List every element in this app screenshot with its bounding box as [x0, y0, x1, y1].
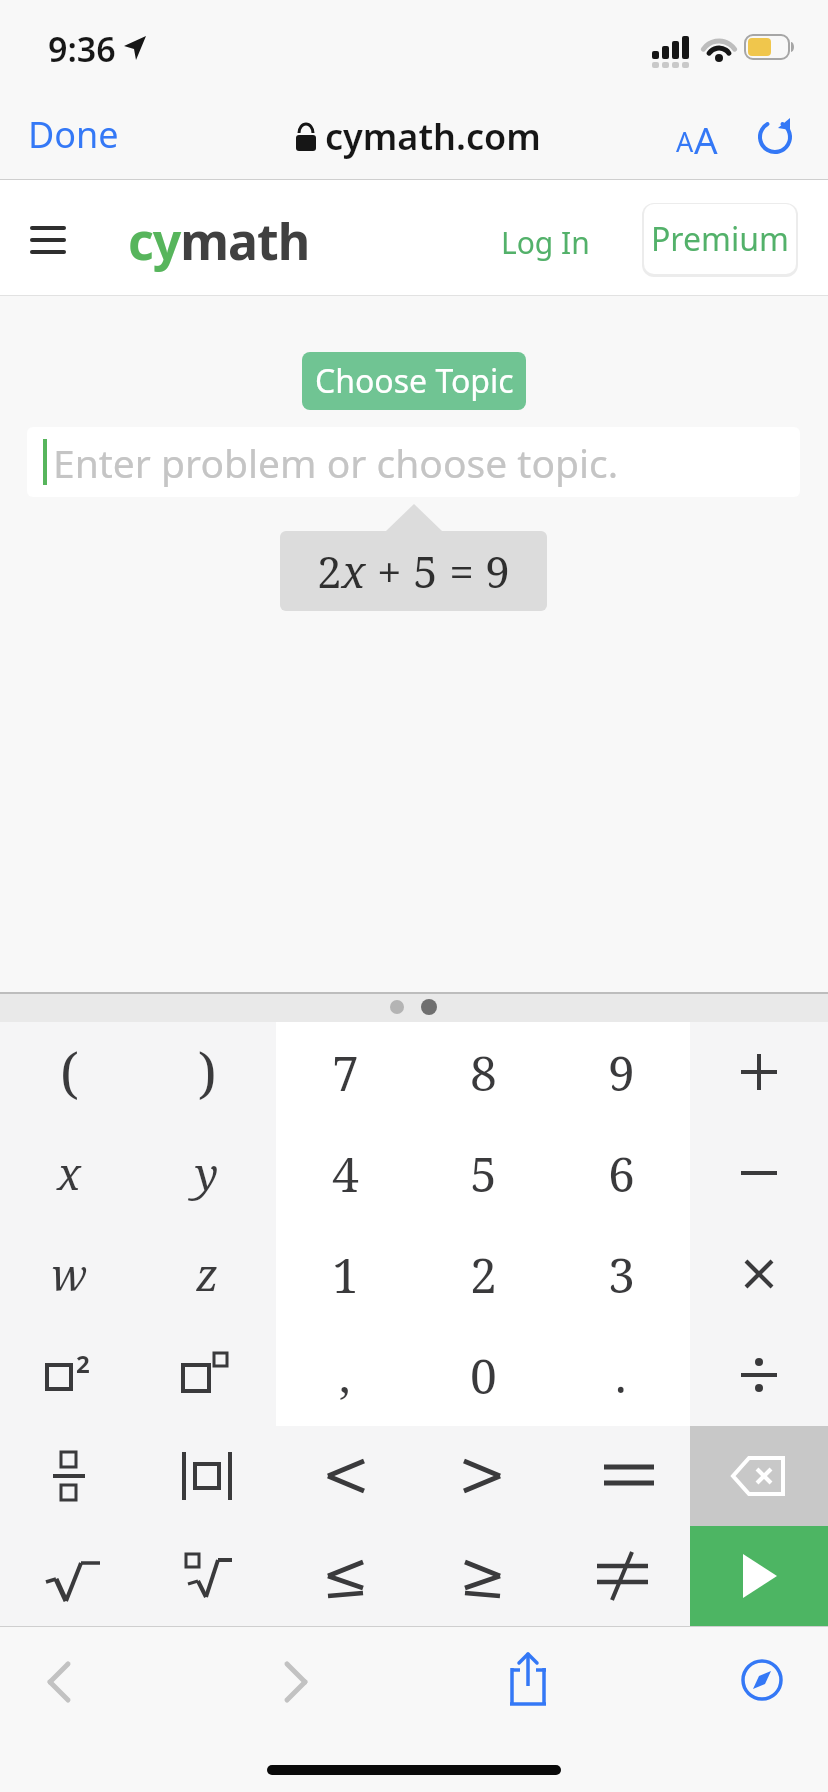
button[interactable]: cymath.com: [295, 112, 541, 161]
staticText: 2: [76, 1347, 90, 1380]
button[interactable]: [138, 1526, 276, 1626]
staticText: (: [60, 1035, 79, 1109]
staticText: z: [196, 1244, 219, 1304]
staticText: cymath.com: [325, 112, 541, 161]
button[interactable]: 0: [414, 1325, 552, 1425]
button[interactable]: 8: [414, 1022, 552, 1122]
button[interactable]: 4: [276, 1123, 414, 1223]
staticText: Premium: [651, 217, 789, 261]
button[interactable]: Log In: [501, 222, 590, 263]
button[interactable]: Done: [28, 110, 119, 159]
button[interactable]: [552, 1426, 690, 1526]
button[interactable]: 3: [552, 1224, 690, 1324]
staticText: Done: [28, 110, 119, 159]
button[interactable]: 2: [0, 1325, 138, 1425]
staticText: y: [195, 1143, 219, 1203]
staticText: 8: [470, 1040, 497, 1105]
button[interactable]: cymath: [128, 207, 310, 275]
staticText: 9:36: [48, 26, 116, 72]
button[interactable]: [414, 1426, 552, 1526]
staticText: 6: [608, 1141, 635, 1206]
staticText: Choose Topic: [315, 359, 514, 403]
button[interactable]: Enter problem or choose topic.: [27, 427, 800, 497]
staticText: A: [676, 123, 694, 160]
button[interactable]: 7: [276, 1022, 414, 1122]
staticText: 7: [332, 1040, 359, 1105]
staticText: Enter problem or choose topic.: [53, 436, 619, 489]
staticText: Log In: [501, 222, 590, 263]
button[interactable]: [276, 1426, 414, 1526]
button[interactable]: [690, 1526, 828, 1626]
staticText: 3: [608, 1242, 635, 1307]
button[interactable]: [0, 1426, 138, 1526]
button[interactable]: ,: [276, 1325, 414, 1425]
button[interactable]: [506, 1652, 550, 1708]
button[interactable]: [690, 1022, 828, 1122]
staticText: 9: [608, 1040, 635, 1105]
button[interactable]: [138, 1426, 276, 1526]
button[interactable]: Premium: [644, 204, 796, 274]
staticText: .: [615, 1344, 627, 1407]
button[interactable]: [690, 1426, 828, 1526]
staticText: ,: [339, 1344, 351, 1407]
button[interactable]: [414, 1526, 552, 1626]
staticText: 0: [470, 1343, 497, 1408]
button[interactable]: [0, 1526, 138, 1626]
staticText: w: [51, 1244, 88, 1304]
button[interactable]: [690, 1123, 828, 1223]
button[interactable]: 6: [552, 1123, 690, 1223]
button[interactable]: 9: [552, 1022, 690, 1122]
button[interactable]: A: [672, 110, 728, 162]
button[interactable]: .: [552, 1325, 690, 1425]
staticText: x: [57, 1143, 82, 1203]
staticText: 5: [470, 1141, 497, 1206]
button[interactable]: [552, 1526, 690, 1626]
staticText: A: [694, 114, 718, 164]
button[interactable]: [756, 116, 794, 156]
staticText: cymath: [128, 207, 310, 275]
button[interactable]: 1: [276, 1224, 414, 1324]
button[interactable]: (: [0, 1022, 138, 1122]
button[interactable]: z: [138, 1224, 276, 1324]
button[interactable]: 5: [414, 1123, 552, 1223]
button[interactable]: [44, 1660, 74, 1704]
button[interactable]: x: [0, 1123, 138, 1223]
button[interactable]: y: [138, 1123, 276, 1223]
staticText: 2: [470, 1242, 497, 1307]
staticText: 4: [332, 1141, 359, 1206]
button[interactable]: 2: [414, 1224, 552, 1324]
staticText: 2x + 5 = 9: [317, 541, 510, 601]
button[interactable]: [22, 212, 74, 264]
staticText: ): [198, 1035, 217, 1109]
button[interactable]: [690, 1224, 828, 1324]
button[interactable]: [276, 1526, 414, 1626]
staticText: 1: [332, 1242, 359, 1307]
button[interactable]: [138, 1325, 276, 1425]
button[interactable]: ): [138, 1022, 276, 1122]
button[interactable]: [740, 1658, 784, 1702]
button[interactable]: Choose Topic: [302, 352, 526, 410]
button[interactable]: w: [0, 1224, 138, 1324]
button[interactable]: [281, 1660, 311, 1704]
button[interactable]: [690, 1325, 828, 1425]
